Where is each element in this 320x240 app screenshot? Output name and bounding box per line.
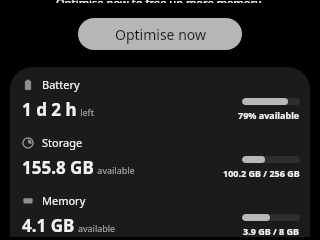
staticText: 1 d 2 h left bbox=[22, 98, 94, 121]
staticText: Storage bbox=[42, 135, 83, 150]
button[interactable]: Battery bbox=[10, 77, 310, 121]
staticText: Memory bbox=[42, 193, 86, 208]
other: Battery bbox=[22, 79, 34, 91]
staticText: 100.2 GB / 256 GB bbox=[223, 167, 300, 179]
other: Storage bbox=[22, 137, 34, 149]
button[interactable]: Optimise now bbox=[78, 18, 242, 50]
staticText: 79% available bbox=[238, 109, 300, 121]
staticText: 4.1 GB available bbox=[22, 214, 116, 237]
button[interactable]: Storage bbox=[10, 135, 310, 179]
staticText: Optimise now to free up more memory. bbox=[56, 0, 264, 3]
staticText: Battery bbox=[42, 77, 80, 92]
button[interactable]: Memory bbox=[10, 193, 310, 237]
staticText: 155.8 GB available bbox=[22, 156, 135, 179]
staticText: Optimise now bbox=[115, 25, 206, 44]
staticText: 3.9 GB / 8 GB bbox=[243, 225, 300, 237]
other: Memory bbox=[22, 195, 34, 207]
